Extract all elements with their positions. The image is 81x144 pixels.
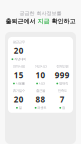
button[interactable]: 평균근무: [8, 40, 30, 61]
staticText: 확인하고: [49, 17, 75, 25]
staticText: 평균근무: [13, 40, 25, 44]
button[interactable]: 만족도: [51, 88, 73, 110]
staticText: 사용률: [16, 81, 25, 85]
staticText: 출근율: [36, 88, 45, 93]
staticText: 7: [60, 94, 65, 105]
staticText: 10: [35, 70, 45, 80]
staticText: 작년대비: [14, 57, 26, 61]
staticText: 15: [14, 70, 24, 80]
staticText: 명재직: [59, 81, 68, 85]
button[interactable]: 야근시간: [30, 64, 51, 85]
staticText: 출퇴근에서: [5, 17, 37, 25]
button[interactable]: 출근율: [30, 88, 51, 110]
staticText: 일: [19, 106, 22, 110]
staticText: 만족도: [58, 88, 67, 93]
staticText: 20: [14, 45, 24, 56]
staticText: 퍼센트: [37, 106, 46, 110]
staticText: 야근시간: [34, 64, 46, 69]
staticText: 88: [35, 94, 45, 105]
staticText: 20: [14, 94, 24, 105]
staticText: 지금: [37, 17, 49, 25]
button[interactable]: 휴가일수: [8, 88, 30, 110]
staticText: 999: [55, 70, 70, 80]
staticText: 점: [62, 106, 65, 110]
staticText: 휴가일수: [13, 88, 25, 93]
button[interactable]: 전체인원: [51, 64, 73, 85]
button[interactable]: 연차사용: [8, 64, 30, 85]
staticText: 전체인원: [56, 64, 68, 69]
staticText: 궁금한 회사정보를: [19, 10, 61, 16]
staticText: 시간: [39, 81, 45, 85]
staticText: 연차사용: [13, 64, 25, 69]
